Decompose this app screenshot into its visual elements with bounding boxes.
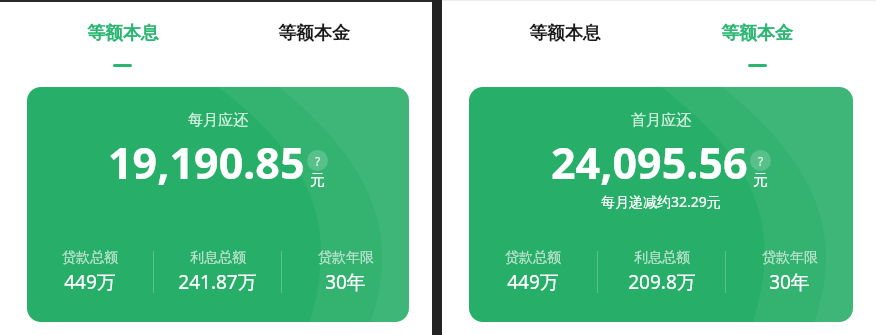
staticText: 30年 <box>769 269 810 295</box>
staticText: 30年 <box>325 269 366 295</box>
staticText: 利息总额 <box>190 249 246 267</box>
staticText: 元 <box>753 171 768 190</box>
button[interactable]: 等额本金 <box>218 22 409 71</box>
button[interactable]: 贷款年限 <box>726 248 853 296</box>
staticText: 首月应还 <box>631 111 691 130</box>
staticText: 元 <box>310 171 325 190</box>
button[interactable]: 帮助说明 <box>307 150 328 171</box>
button[interactable]: 等额本金 <box>661 22 853 71</box>
staticText: 449万 <box>64 269 116 295</box>
staticText: 241.87万 <box>178 269 257 295</box>
staticText: 贷款年限 <box>762 249 818 267</box>
staticText: 贷款总额 <box>62 249 118 267</box>
staticText: 每月应还 <box>188 111 248 130</box>
staticText: 449万 <box>507 269 559 295</box>
staticText: 贷款年限 <box>318 249 374 267</box>
button[interactable]: 等额本息 <box>469 22 661 71</box>
staticText: 等额本金 <box>278 22 350 45</box>
button[interactable]: 贷款总额 <box>27 248 153 296</box>
staticText: 等额本息 <box>529 22 601 45</box>
button[interactable]: 贷款年限 <box>282 248 409 296</box>
staticText: 等额本金 <box>721 22 793 45</box>
staticText: 19,190.85 <box>108 133 305 192</box>
button[interactable]: 等额本息 <box>27 22 218 71</box>
staticText: 等额本息 <box>87 22 159 45</box>
staticText: 每月递减约32.29元 <box>601 192 721 211</box>
staticText: 209.8万 <box>628 269 696 295</box>
staticText: 24,095.56 <box>551 133 748 192</box>
button[interactable]: 贷款总额 <box>469 248 597 296</box>
button[interactable]: 帮助说明 <box>750 150 771 171</box>
staticText: ? <box>315 153 321 169</box>
button[interactable]: 利息总额 <box>154 248 281 296</box>
staticText: 贷款总额 <box>505 249 561 267</box>
button[interactable]: 利息总额 <box>598 248 725 296</box>
button[interactable]: 首月应还 <box>469 87 853 322</box>
button[interactable]: 每月应还 <box>27 87 409 322</box>
staticText: ? <box>758 153 764 169</box>
staticText: 利息总额 <box>634 249 690 267</box>
